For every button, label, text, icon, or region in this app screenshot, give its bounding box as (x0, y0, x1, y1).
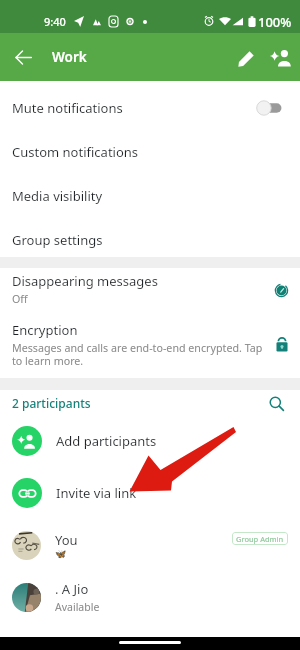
button[interactable]: Add participant (264, 33, 300, 81)
button[interactable]: Encryption (0, 310, 300, 378)
button[interactable]: Group settings (0, 218, 300, 262)
button[interactable]: Invite via link (0, 467, 300, 519)
staticText: Custom notifications (12, 143, 139, 161)
button[interactable]: . A Jio (0, 571, 300, 623)
staticText: Add participants (56, 432, 157, 450)
staticText: Group settings (12, 231, 103, 249)
staticText: Invite via link (56, 484, 137, 502)
staticText: 2 participants (12, 395, 91, 411)
button[interactable]: Edit (228, 33, 264, 81)
button[interactable]: Custom notifications (0, 130, 300, 174)
button[interactable]: Search (264, 391, 288, 415)
staticText: Group Admin (236, 534, 284, 544)
staticText: Messages and calls are end-to-end encryp… (12, 341, 263, 368)
staticText: Off (12, 292, 28, 307)
staticText: . A Jio (55, 580, 89, 598)
button[interactable]: Disappearing messages (0, 268, 300, 310)
button[interactable]: Back (0, 33, 47, 81)
button[interactable]: Media visibility (0, 174, 300, 218)
staticText: 9:40 (44, 14, 66, 29)
button[interactable]: Mute notifications (0, 86, 300, 130)
button[interactable]: You (0, 519, 300, 571)
staticText: Available (55, 600, 100, 614)
button[interactable]: Add participants (0, 415, 300, 467)
staticText: Work (52, 48, 87, 66)
button[interactable]: Mute notifications toggle (255, 100, 282, 116)
staticText: Disappearing messages (12, 272, 158, 290)
staticText: Mute notifications (12, 99, 123, 117)
staticText: You (55, 531, 78, 549)
staticText: Encryption (12, 321, 78, 339)
staticText: 100% (258, 13, 292, 31)
staticText: 🦋 (55, 549, 67, 560)
staticText: Media visibility (12, 187, 103, 205)
